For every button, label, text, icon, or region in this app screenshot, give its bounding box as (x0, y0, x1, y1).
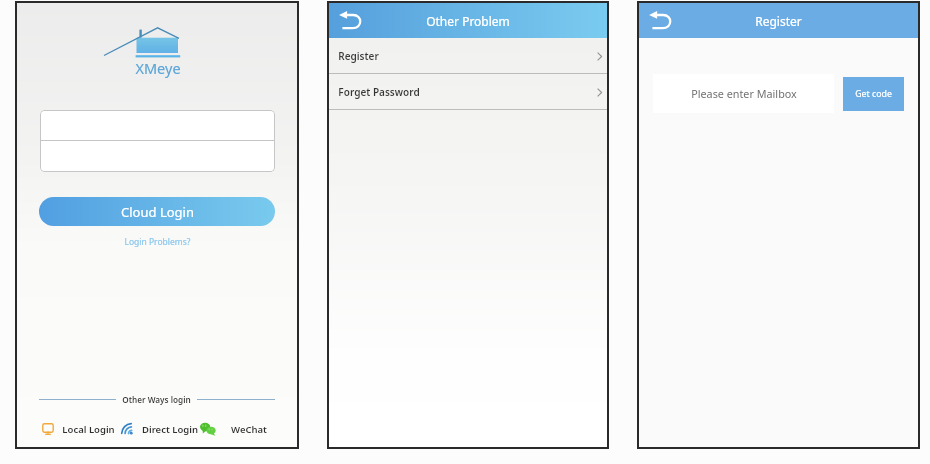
button[interactable]: Cloud Login (39, 197, 275, 226)
button[interactable]: Back (338, 9, 364, 33)
staticText: Other Problem (426, 13, 510, 29)
staticText: Other Ways login (122, 394, 191, 405)
button[interactable]: Login Problems? (17, 236, 297, 248)
staticText: Cloud Login (121, 203, 194, 221)
button[interactable]: Direct Login (122, 421, 198, 437)
staticText: XMeye (135, 58, 181, 78)
staticText: Login Problems? (124, 236, 191, 248)
button[interactable]: WeChat (200, 421, 267, 437)
other: Local Login (42, 423, 54, 435)
staticText: Direct Login (142, 423, 198, 436)
other: WeChat (200, 422, 216, 436)
button[interactable]: Local Login (42, 421, 115, 437)
staticText: Register (755, 13, 802, 29)
staticText: Forget Password (338, 85, 420, 99)
button[interactable]: Get code (843, 77, 904, 111)
staticText: Please enter Mailbox (691, 86, 797, 101)
staticText: Local Login (62, 423, 115, 436)
button[interactable] (40, 110, 275, 140)
other: Direct Login (122, 423, 135, 436)
button[interactable]: Register (329, 38, 607, 74)
button[interactable]: Forget Password (329, 74, 607, 110)
staticText: Register (338, 49, 379, 63)
staticText: WeChat (231, 423, 267, 436)
staticText: Get code (855, 88, 892, 100)
button[interactable]: Back (648, 9, 674, 33)
button[interactable]: Please enter Mailbox (653, 74, 834, 113)
button[interactable] (40, 141, 275, 172)
